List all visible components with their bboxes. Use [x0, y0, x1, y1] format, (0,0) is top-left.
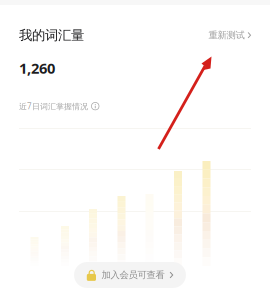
button[interactable]: 重新测试 — [209, 29, 251, 41]
staticText: 近7日词汇掌握情况 — [19, 101, 88, 111]
staticText: 1,260 — [19, 58, 55, 78]
button[interactable]: 加入会员可查看 — [74, 262, 186, 288]
staticText: 加入会员可查看 — [102, 269, 165, 281]
staticText: 重新测试 — [209, 29, 245, 41]
staticText: 我的词汇量 — [19, 27, 84, 43]
